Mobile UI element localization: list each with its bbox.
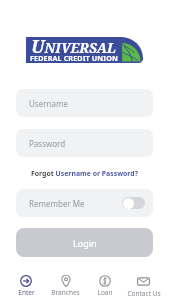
staticText: Enter	[18, 288, 35, 297]
button[interactable]: Branches	[46, 272, 85, 300]
button[interactable]: Password	[16, 129, 153, 157]
button[interactable]: Enter	[6, 272, 46, 300]
staticText: Branches	[51, 288, 80, 297]
staticText: Remember Me	[29, 198, 85, 209]
button[interactable]: Login	[16, 228, 153, 257]
staticText: Contact Us	[127, 289, 161, 298]
staticText: Username	[29, 98, 68, 109]
button[interactable]: Contact Us	[124, 272, 163, 300]
staticText: Loan	[97, 288, 113, 297]
staticText: Password	[29, 138, 66, 149]
staticText: Forgot Username or Password?	[31, 169, 138, 178]
button[interactable]: Forgot Username or Password?	[27, 166, 142, 181]
button[interactable]: Loan	[85, 272, 124, 300]
staticText: FEDERAL CREDIT UNION	[30, 53, 118, 63]
button[interactable]: Username	[16, 89, 153, 117]
staticText: Login	[73, 237, 97, 249]
staticText: UNIVERSAL	[31, 34, 117, 59]
button[interactable]: Remember Me	[16, 189, 153, 217]
